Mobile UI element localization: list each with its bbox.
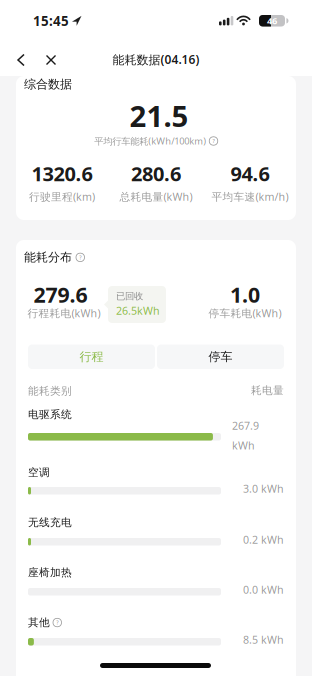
button[interactable]: Close [38, 47, 64, 73]
staticText: 平均车速(km/h) [211, 189, 288, 204]
staticText: 能耗数据(04.16) [112, 51, 199, 67]
staticText: 行驶里程(km) [29, 189, 95, 204]
staticText: 空调 [28, 466, 50, 479]
staticText: 平均行车能耗(kWh/100km) [94, 135, 206, 147]
button[interactable]: Info [209, 137, 218, 145]
staticText: 0.0 kWh [243, 582, 284, 597]
staticText: 267.9 [232, 418, 259, 433]
staticText: 无线充电 [28, 516, 72, 529]
staticText: 行程 [79, 349, 103, 364]
button[interactable]: 行程 [28, 344, 155, 369]
staticText: 耗电量 [251, 384, 284, 397]
staticText: 座椅加热 [28, 566, 72, 579]
staticText: 94.6 [230, 160, 269, 187]
staticText: 行程耗电(kWh) [27, 306, 100, 320]
staticText: 0.2 kWh [243, 532, 284, 547]
staticText: ? [79, 254, 81, 261]
staticText: 电驱系统 [28, 408, 72, 421]
button[interactable]: 停车 [157, 344, 284, 369]
staticText: 26.5kWh [116, 303, 160, 318]
staticText: 能耗类别 [28, 384, 72, 398]
staticText: 279.6 [33, 280, 87, 309]
staticText: 8.5 kWh [243, 632, 284, 647]
staticText: 综合数据 [24, 77, 72, 92]
button[interactable]: Info [76, 253, 84, 262]
staticText: 15:45 [33, 12, 69, 30]
staticText: 1320.6 [31, 160, 92, 187]
staticText: 总耗电量(kWh) [119, 189, 192, 204]
staticText: 其他 [28, 616, 50, 629]
staticText: ? [56, 619, 58, 626]
staticText: 3.0 kWh [243, 481, 284, 496]
staticText: 能耗分布 [24, 250, 72, 265]
staticText: 已回收 [116, 290, 143, 302]
staticText: 停车 [208, 349, 232, 364]
staticText: kWh [232, 438, 255, 452]
staticText: 停车耗电(kWh) [208, 306, 281, 320]
staticText: 1.0 [230, 280, 260, 309]
staticText: 46 [267, 15, 277, 27]
button[interactable]: Back [8, 47, 34, 73]
button[interactable]: Info [53, 618, 61, 627]
staticText: 21.5 [129, 96, 188, 135]
staticText: 280.6 [131, 160, 181, 187]
staticText: ? [212, 137, 214, 145]
